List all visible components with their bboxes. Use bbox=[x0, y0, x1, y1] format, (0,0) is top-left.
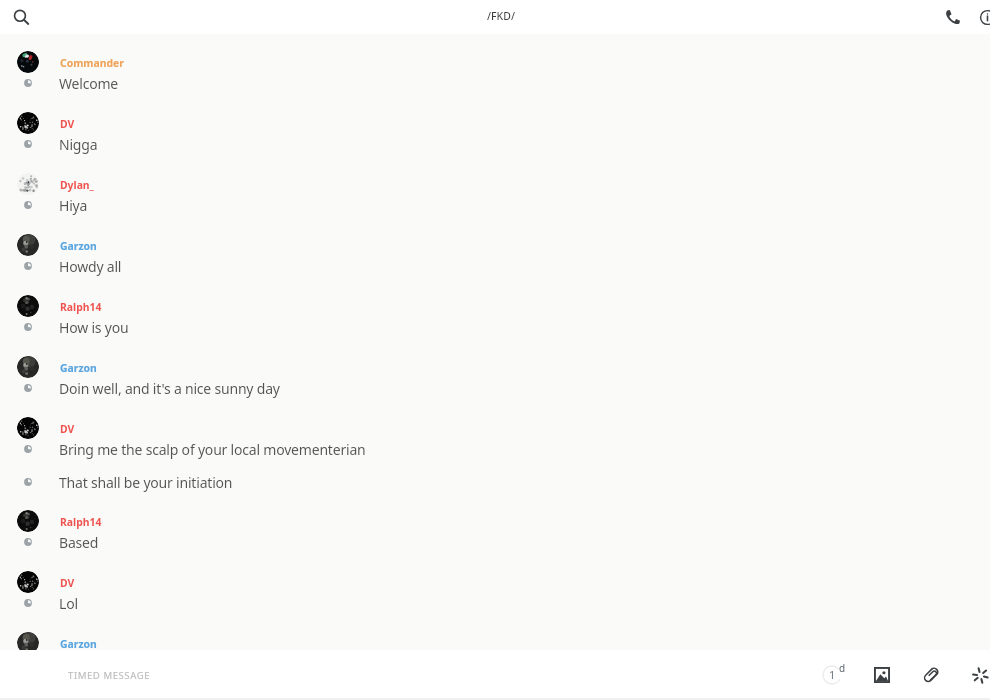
button[interactable]: Search bbox=[9, 5, 33, 29]
staticText: d bbox=[839, 661, 846, 675]
button[interactable]: Commander bbox=[0, 36, 990, 97]
button[interactable]: Info bbox=[972, 2, 990, 32]
staticText: Howdy all bbox=[59, 257, 122, 276]
staticText: How is you bbox=[59, 318, 129, 337]
staticText: TIMED MESSAGE bbox=[68, 669, 151, 682]
staticText: DV bbox=[60, 117, 75, 131]
staticText: Ralph14 bbox=[60, 300, 102, 314]
staticText: Garzon bbox=[60, 361, 97, 375]
staticText: Welcome bbox=[59, 74, 119, 93]
staticText: Based bbox=[59, 533, 99, 552]
button[interactable]: DV bbox=[0, 402, 990, 463]
button[interactable]: DV bbox=[0, 556, 990, 617]
staticText: Bring me the scalp of your local movemen… bbox=[59, 440, 366, 459]
staticText: /FKD/ bbox=[487, 9, 515, 23]
button[interactable]: Garzon bbox=[0, 341, 990, 402]
staticText: Dylan_ bbox=[60, 178, 94, 192]
button[interactable]: Ralph14 bbox=[0, 495, 990, 556]
button[interactable]: Call bbox=[938, 2, 968, 32]
staticText: DV bbox=[60, 576, 75, 590]
staticText: Commander bbox=[60, 56, 124, 70]
button[interactable]: Gallery bbox=[862, 655, 902, 695]
staticText: Doin well, and it's a nice sunny day bbox=[59, 379, 280, 398]
staticText: DV bbox=[60, 422, 75, 436]
button[interactable]: TIMED MESSAGE bbox=[0, 650, 800, 698]
button[interactable]: Garzon bbox=[0, 617, 990, 650]
button[interactable]: Dylan_ bbox=[0, 158, 990, 219]
staticText: Lol bbox=[59, 594, 78, 613]
button[interactable]: Attach file bbox=[911, 655, 951, 695]
button[interactable]: Effects bbox=[960, 655, 990, 695]
button[interactable]: Ralph14 bbox=[0, 280, 990, 341]
staticText: Nigga bbox=[59, 135, 98, 154]
staticText: That shall be your initiation bbox=[59, 473, 233, 492]
staticText: Hiya bbox=[59, 196, 88, 215]
button[interactable]: Garzon bbox=[0, 219, 990, 280]
button[interactable]: DV bbox=[0, 97, 990, 158]
staticText: 1 bbox=[829, 667, 836, 682]
button[interactable]: Message timer one day bbox=[812, 655, 852, 695]
staticText: Garzon bbox=[60, 239, 97, 253]
staticText: Garzon bbox=[60, 637, 97, 650]
staticText: Ralph14 bbox=[60, 515, 102, 529]
button[interactable]: That shall be your initiation bbox=[0, 463, 990, 495]
